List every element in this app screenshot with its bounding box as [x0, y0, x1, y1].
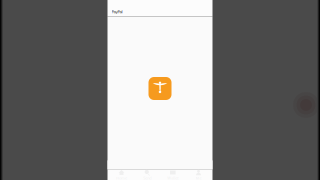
button[interactable]: Me — [186, 170, 210, 180]
button[interactable]: Wallet — [161, 170, 185, 180]
button[interactable]: Home — [109, 170, 133, 180]
staticText: PayPal — [111, 9, 122, 14]
